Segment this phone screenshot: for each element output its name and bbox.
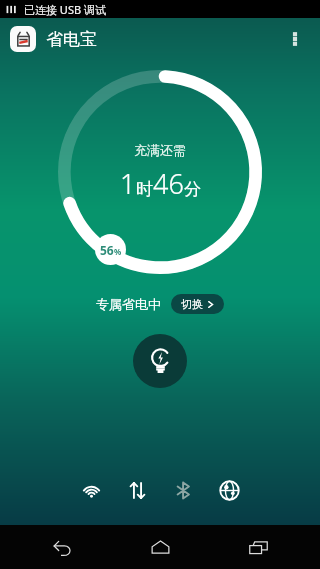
staticText: 充满还需 [134, 142, 186, 158]
staticText: 1 [120, 165, 136, 202]
button[interactable]: Recents [240, 529, 276, 565]
button[interactable]: Wi-Fi [76, 475, 106, 505]
staticText: 分 [184, 179, 201, 200]
button[interactable]: 切换 [171, 294, 224, 314]
button[interactable]: Bluetooth [168, 475, 198, 505]
button[interactable]: More options [280, 24, 310, 54]
button[interactable]: Optimize battery [133, 334, 187, 388]
staticText: % [114, 246, 122, 257]
button[interactable]: Mobile data [122, 475, 152, 505]
staticText: 56 [100, 242, 114, 258]
staticText: 切换 [181, 297, 203, 311]
button[interactable]: Home [142, 529, 178, 565]
staticText: 46 [153, 165, 184, 202]
staticText: 省电宝 [46, 29, 97, 50]
staticText: 专属省电中 [96, 296, 161, 312]
button[interactable]: Back [44, 529, 80, 565]
staticText: 时 [136, 179, 153, 200]
staticText: 已连接 USB 调试 [24, 2, 106, 17]
button[interactable]: Network [214, 475, 244, 505]
